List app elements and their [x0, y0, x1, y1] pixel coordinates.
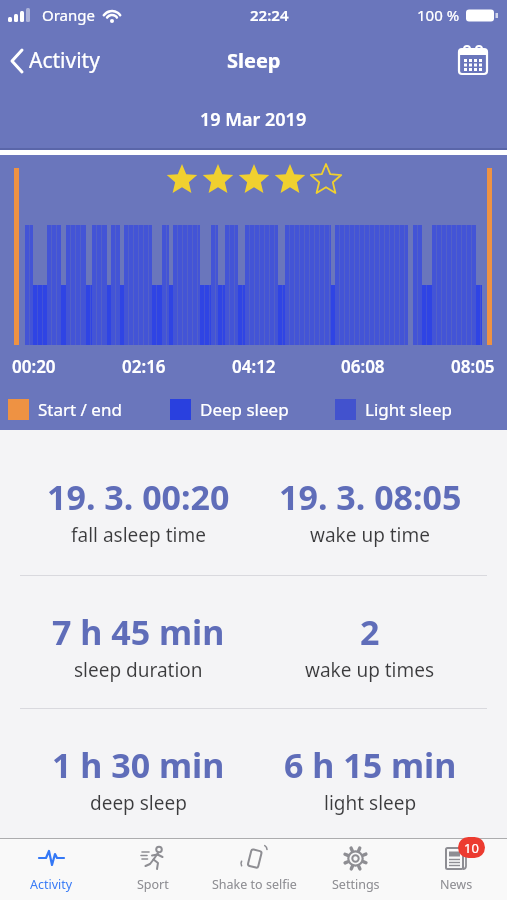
staticText: Deep sleep	[200, 398, 289, 421]
staticText: 19. 3. 08:05	[279, 474, 462, 520]
staticText: 2	[360, 609, 380, 655]
staticText: wake up times	[305, 657, 435, 683]
button[interactable]	[455, 42, 491, 78]
staticText: deep sleep	[90, 790, 187, 816]
staticText: 22:24	[250, 5, 289, 25]
staticText: sleep duration	[74, 657, 203, 683]
staticText: fall asleep time	[71, 522, 206, 548]
staticText: Settings	[332, 876, 380, 893]
staticText: light sleep	[324, 790, 417, 816]
staticText: Sleep	[227, 47, 281, 74]
staticText: 04:12	[232, 355, 276, 378]
staticText: Light sleep	[365, 398, 452, 421]
staticText: Start / end	[38, 398, 122, 421]
button[interactable]: Settings	[305, 839, 406, 900]
staticText: 06:08	[341, 355, 385, 378]
button[interactable]: Sport	[102, 839, 204, 900]
button[interactable]: Shake to selfie	[204, 839, 305, 900]
button[interactable]: Activity	[10, 46, 100, 75]
staticText: 08:05	[451, 355, 495, 378]
staticText: Activity	[30, 876, 73, 893]
button[interactable]: Activity	[0, 839, 102, 900]
staticText: 10	[464, 839, 479, 857]
staticText: Activity	[29, 46, 100, 75]
staticText: Orange	[42, 5, 95, 25]
button[interactable]: 10	[406, 839, 507, 900]
staticText: 7 h 45 min	[52, 609, 225, 655]
staticText: 00:20	[12, 355, 56, 378]
staticText: 6 h 15 min	[284, 742, 457, 788]
staticText: 19 Mar 2019	[200, 107, 307, 132]
staticText: wake up time	[310, 522, 431, 548]
staticText: 19. 3. 00:20	[47, 474, 230, 520]
staticText: 100 %	[417, 5, 460, 25]
staticText: Sport	[137, 876, 169, 893]
staticText: 1 h 30 min	[52, 742, 225, 788]
staticText: Shake to selfie	[212, 876, 297, 893]
staticText: 02:16	[122, 355, 166, 378]
staticText: News	[440, 876, 473, 893]
